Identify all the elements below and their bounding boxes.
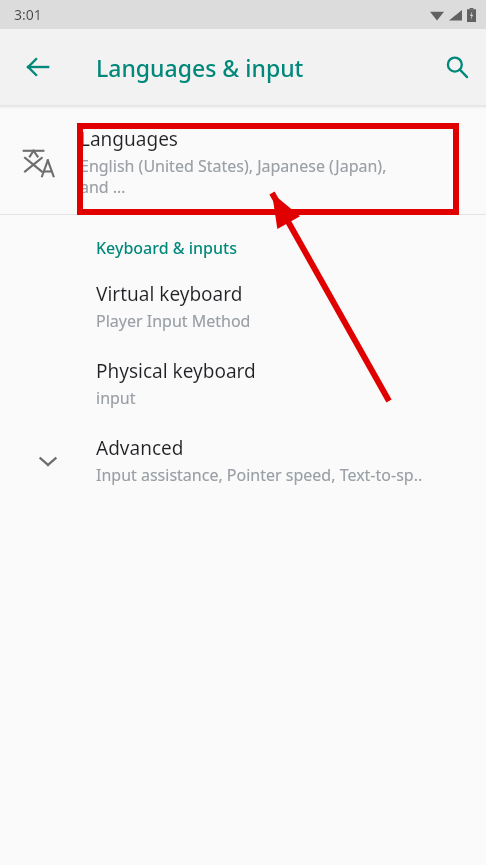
button[interactable]: Search — [433, 43, 481, 91]
staticText: Advanced — [96, 435, 184, 461]
staticText: input — [96, 387, 136, 409]
staticText: Languages & input — [96, 52, 304, 83]
staticText: Input assistance, Pointer speed, Text-to… — [96, 464, 423, 486]
button[interactable]: Virtual keyboard — [0, 281, 486, 332]
staticText: Player Input Method — [96, 310, 251, 332]
button[interactable]: Advanced — [0, 435, 486, 486]
button[interactable]: Physical keyboard — [0, 358, 486, 409]
staticText: Physical keyboard — [96, 358, 256, 384]
staticText: 3:01 — [14, 5, 42, 24]
button[interactable]: Languages — [0, 110, 486, 214]
button[interactable]: Back — [14, 43, 62, 91]
staticText: English (United States), Japanese (Japan… — [80, 155, 387, 198]
staticText: Virtual keyboard — [96, 281, 243, 307]
staticText: Languages — [80, 126, 178, 152]
staticText: Keyboard & inputs — [96, 237, 237, 259]
